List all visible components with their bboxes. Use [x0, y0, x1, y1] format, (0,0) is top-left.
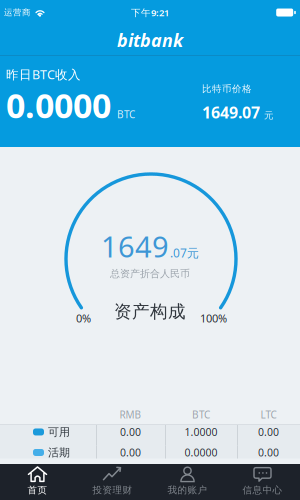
- staticText: BTC: [192, 408, 210, 421]
- staticText: bitbank: [117, 28, 183, 52]
- staticText: 1649.07: [202, 102, 260, 123]
- button[interactable]: 投资理财: [75, 464, 150, 500]
- staticText: 1.0000: [184, 425, 217, 439]
- staticText: 0%: [76, 311, 91, 326]
- staticText: 0.00: [120, 425, 141, 439]
- button[interactable]: 首页: [0, 464, 75, 500]
- staticText: 1649: [101, 227, 169, 265]
- staticText: 0.0000: [6, 83, 111, 128]
- button[interactable]: 我的账户: [150, 464, 225, 500]
- staticText: 元: [264, 109, 274, 121]
- staticText: 运营商: [4, 7, 31, 18]
- staticText: 活期: [48, 446, 70, 459]
- staticText: BTC: [117, 108, 135, 121]
- staticText: 0.00: [120, 445, 141, 459]
- staticText: 信息中心: [242, 484, 282, 496]
- staticText: 总资产折合人民币: [110, 267, 190, 280]
- staticText: 资产构成: [114, 301, 186, 322]
- staticText: 投资理财: [92, 484, 132, 496]
- staticText: 可用: [48, 425, 70, 439]
- button[interactable]: 信息中心: [225, 464, 300, 500]
- staticText: RMB: [119, 408, 141, 421]
- staticText: 0.00: [258, 425, 279, 439]
- staticText: 下午9:21: [131, 6, 169, 19]
- staticText: 比特币价格: [202, 83, 252, 95]
- staticText: 我的账户: [167, 484, 207, 496]
- staticText: 0.0000: [184, 445, 217, 459]
- staticText: 100%: [200, 311, 227, 326]
- staticText: 昨日BTC收入: [6, 66, 81, 83]
- staticText: 首页: [27, 484, 47, 496]
- staticText: LTC: [260, 408, 276, 421]
- staticText: 0.00: [258, 445, 279, 459]
- staticText: .07元: [170, 245, 199, 261]
